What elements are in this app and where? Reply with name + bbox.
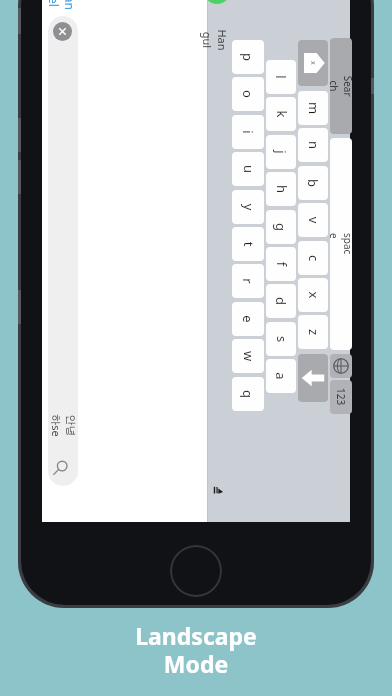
staticText: l (272, 75, 290, 79)
staticText: q (239, 390, 257, 398)
staticText: u (239, 164, 257, 173)
staticText: v (304, 216, 322, 223)
staticText: o (239, 90, 257, 98)
button[interactable]: Home (170, 545, 222, 597)
staticText: Search (330, 75, 352, 97)
button[interactable]: m (298, 91, 328, 125)
button[interactable]: b (298, 166, 328, 200)
staticText: m (304, 101, 322, 114)
staticText: c (304, 254, 322, 261)
button[interactable]: Shift (298, 40, 328, 86)
staticText: a (272, 372, 290, 380)
button[interactable]: Clear text (53, 22, 72, 41)
button[interactable]: c (298, 241, 328, 275)
button[interactable]: p (232, 40, 264, 74)
staticText: f (272, 261, 290, 266)
button[interactable]: o (232, 77, 264, 111)
button[interactable]: f (266, 247, 296, 281)
button[interactable]: g (266, 210, 296, 244)
button[interactable]: q (232, 377, 264, 411)
button[interactable]: 123 (330, 380, 352, 414)
staticText: w (239, 350, 257, 361)
staticText: Hangul (200, 29, 230, 51)
button[interactable]: j (266, 135, 296, 169)
staticText: h (272, 184, 290, 193)
button[interactable]: x (298, 278, 328, 312)
button[interactable]: d (266, 284, 296, 318)
staticText: z (304, 328, 322, 335)
button[interactable]: Next keyboard (330, 354, 352, 378)
staticText: j (272, 150, 290, 154)
button[interactable]: Search (330, 38, 352, 134)
button[interactable]: s (266, 322, 296, 356)
staticText: space (330, 233, 352, 255)
button[interactable]: h (266, 172, 296, 206)
button[interactable]: y (232, 190, 264, 224)
button[interactable]: r (232, 264, 264, 298)
button[interactable]: Backspace (298, 354, 328, 402)
staticText: Cancel (46, 0, 78, 11)
staticText: i (239, 130, 257, 134)
staticText: d (272, 297, 290, 305)
button[interactable]: w (232, 339, 264, 373)
staticText: x (304, 291, 322, 298)
button[interactable]: z (298, 315, 328, 349)
button[interactable]: u (232, 152, 264, 186)
staticText: b (304, 179, 322, 187)
button[interactable]: a (266, 359, 296, 393)
staticText: r (239, 278, 257, 284)
staticText: 123 (334, 388, 348, 406)
staticText: e (239, 315, 257, 323)
staticText: Landscape Mode (135, 620, 257, 680)
button[interactable] (48, 16, 78, 486)
button[interactable]: Hide keyboard (210, 482, 226, 498)
button[interactable]: space (330, 138, 352, 350)
staticText: 안녕하se (48, 412, 77, 438)
staticText: s (272, 335, 290, 342)
staticText: x (308, 61, 318, 65)
button[interactable]: t (232, 227, 264, 261)
button[interactable]: l (266, 60, 296, 94)
other: Search (53, 458, 73, 478)
staticText: p (239, 53, 257, 61)
button[interactable]: i (232, 115, 264, 149)
staticText: g (272, 223, 290, 231)
staticText: n (304, 140, 322, 149)
button[interactable]: n (298, 128, 328, 162)
staticText: y (239, 203, 257, 210)
button[interactable]: k (266, 97, 296, 131)
button[interactable]: v (298, 203, 328, 237)
button[interactable]: e (232, 302, 264, 336)
staticText: t (239, 241, 257, 246)
staticText: k (272, 110, 290, 117)
